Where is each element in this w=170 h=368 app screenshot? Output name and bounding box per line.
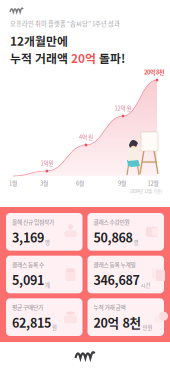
- staticText: 4억 원: [79, 133, 93, 141]
- button[interactable]: 올해 신규 입점작가: [6, 213, 82, 251]
- staticText: 원: [52, 324, 57, 331]
- staticText: 시간: [140, 281, 150, 289]
- staticText: 올해 신규 입점작가: [12, 218, 54, 226]
- staticText: 346,687: [93, 271, 139, 289]
- staticText: 12월: [147, 179, 158, 187]
- staticText: 62,815: [12, 313, 51, 331]
- staticText: 개: [45, 281, 50, 289]
- staticText: 클래스 등록 수: [12, 260, 44, 269]
- staticText: 20억 8천: [144, 68, 164, 76]
- staticText: 3,169: [12, 228, 44, 246]
- button[interactable]: 누적 거래 금액: [87, 298, 164, 336]
- staticText: 1억원: [40, 159, 53, 167]
- staticText: 20억: [71, 49, 96, 66]
- button[interactable]: 클래스 수강인원: [87, 213, 164, 251]
- staticText: 만원: [142, 324, 152, 331]
- staticText: 누적 거래액: [10, 49, 71, 66]
- staticText: 돌파!: [96, 49, 125, 66]
- staticText: 오프라인 취미 플랫폼 “솜씨당” 1주년 성과: [10, 19, 120, 28]
- button[interactable]: 클래스 등록 수: [6, 256, 82, 293]
- staticText: 평균 구매단가: [12, 303, 43, 311]
- staticText: 1월: [9, 179, 17, 187]
- staticText: 5,091: [12, 271, 44, 289]
- staticText: 12개월만에: [10, 32, 68, 49]
- staticText: 3월: [40, 179, 48, 187]
- staticText: 50,868: [93, 228, 132, 246]
- staticText: 20억 8천: [93, 313, 141, 331]
- button[interactable]: 평균 구매단가: [6, 298, 82, 336]
- button[interactable]: 클래스 등록 누계일: [87, 256, 164, 293]
- staticText: 6월: [76, 179, 84, 187]
- staticText: (2024년 12월 기준): [130, 188, 162, 194]
- staticText: 클래스 등록 누계일: [93, 260, 135, 269]
- staticText: 클래스 수강인원: [93, 218, 129, 226]
- staticText: 명: [133, 238, 138, 246]
- staticText: 명: [45, 238, 50, 246]
- staticText: 12억 원: [114, 104, 131, 112]
- staticText: 누적 거래 금액: [93, 303, 125, 311]
- staticText: 9월: [118, 179, 126, 187]
